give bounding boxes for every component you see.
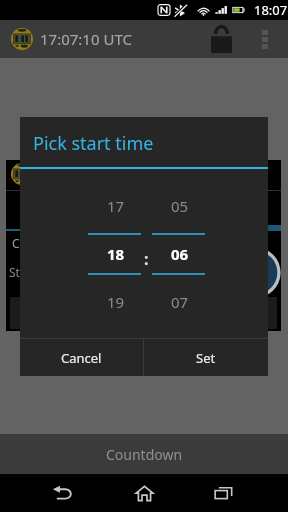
staticText: 06: [171, 244, 189, 264]
staticText: Set: [196, 349, 216, 367]
staticText: 18:07: [254, 1, 288, 19]
staticText: :: [144, 248, 149, 270]
staticText: 18: [107, 244, 125, 264]
button[interactable]: Home: [124, 474, 164, 512]
staticText: 05: [171, 196, 189, 216]
staticText: Countdown: [106, 445, 183, 464]
staticText: Cancel: [61, 349, 102, 367]
staticText: 17:07:10 UTC: [40, 29, 132, 49]
staticText: 17: [107, 196, 125, 216]
button[interactable]: Cancel: [20, 339, 143, 376]
button[interactable]: Set: [144, 339, 268, 376]
button[interactable]: [10, 297, 277, 329]
staticText: Clock: [12, 235, 43, 251]
staticText: 07: [171, 292, 189, 312]
button[interactable]: More options: [250, 20, 280, 58]
button[interactable]: Back: [43, 474, 83, 512]
staticText: 19: [107, 292, 125, 312]
button[interactable]: Lock: [206, 20, 236, 58]
staticText: Pick start time: [33, 131, 154, 155]
button[interactable]: Recent apps: [203, 474, 243, 512]
staticText: Start: 18:06: [9, 264, 73, 280]
